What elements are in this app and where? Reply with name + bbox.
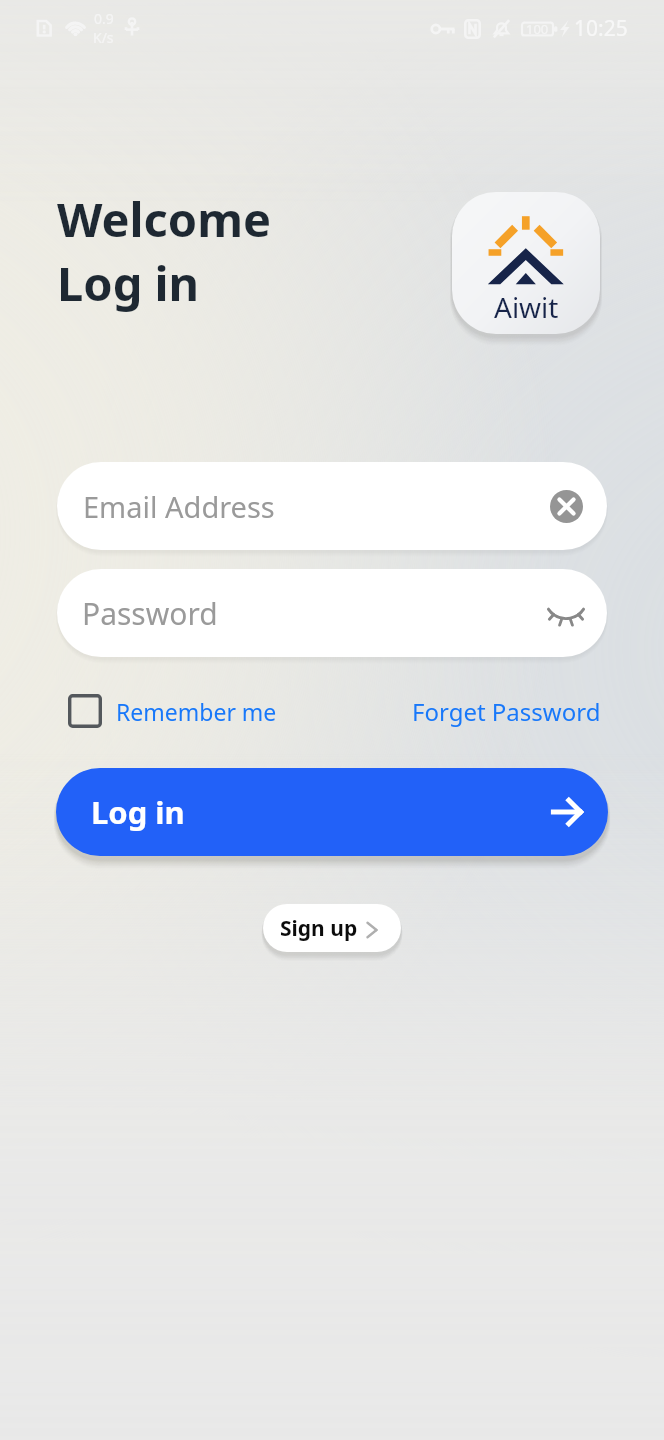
staticText: Log in: [57, 251, 200, 315]
button[interactable]: Forget Password: [412, 695, 601, 728]
button[interactable]: Log in: [56, 768, 608, 856]
staticText: K/s: [93, 28, 114, 47]
staticText: Log in: [91, 791, 185, 833]
staticText: Welcome: [57, 187, 272, 251]
staticText: 10:25: [574, 14, 628, 43]
staticText: Sign up: [280, 914, 358, 943]
staticText: 0.9: [94, 9, 114, 28]
button[interactable]: Clear email: [550, 490, 583, 523]
staticText: Password: [82, 593, 218, 634]
button[interactable]: Show password: [542, 593, 590, 641]
button[interactable]: Aiwit logo: [452, 192, 600, 334]
staticText: Aiwit: [494, 288, 559, 326]
button[interactable]: Email Address: [57, 462, 607, 550]
staticText: Email Address: [83, 487, 275, 526]
staticText: 100: [526, 20, 549, 38]
staticText: Remember me: [116, 696, 277, 727]
button[interactable]: Sign up: [263, 904, 401, 952]
button[interactable]: Password: [57, 569, 607, 657]
button[interactable]: Remember me: [68, 694, 277, 728]
